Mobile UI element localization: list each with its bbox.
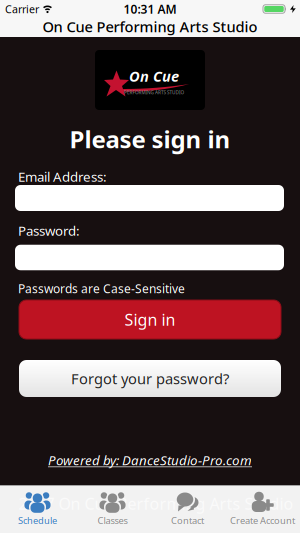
staticText: Carrier [5, 2, 39, 16]
staticText: Schedule [18, 514, 57, 527]
staticText: Passwords are Case-Sensitive [18, 280, 185, 296]
staticText: PERFORMING ARTS STUDIO [94, 86, 214, 99]
button[interactable]: Create Account [225, 486, 300, 533]
button[interactable]: Contact [150, 486, 225, 533]
staticText: Sign in [124, 309, 175, 330]
staticText: Classes [97, 514, 127, 527]
staticText: 2017 On Cue Performing Arts Studio [18, 493, 293, 514]
button[interactable]: Email Address [15, 185, 284, 211]
button[interactable]: Password [15, 245, 284, 270]
staticText: 10:31 AM [123, 1, 176, 17]
staticText: Contact [171, 514, 204, 527]
staticText: Email Address: [18, 168, 107, 185]
staticText: Create Account [230, 514, 295, 527]
button[interactable]: Schedule [0, 486, 75, 533]
button[interactable]: Sign in [19, 300, 281, 339]
staticText: On Cue Performing Arts Studio [42, 17, 257, 36]
staticText: Please sign in [69, 123, 230, 155]
button[interactable]: Forgot your password? [19, 360, 281, 397]
staticText: On Cue [129, 66, 179, 86]
button[interactable]: Classes [75, 486, 150, 533]
staticText: Forgot your password? [71, 369, 229, 388]
staticText: Powered by: DanceStudio-Pro.com [48, 451, 252, 469]
staticText: Password: [18, 222, 80, 239]
button[interactable]: Powered by: DanceStudio-Pro.com [48, 451, 252, 469]
